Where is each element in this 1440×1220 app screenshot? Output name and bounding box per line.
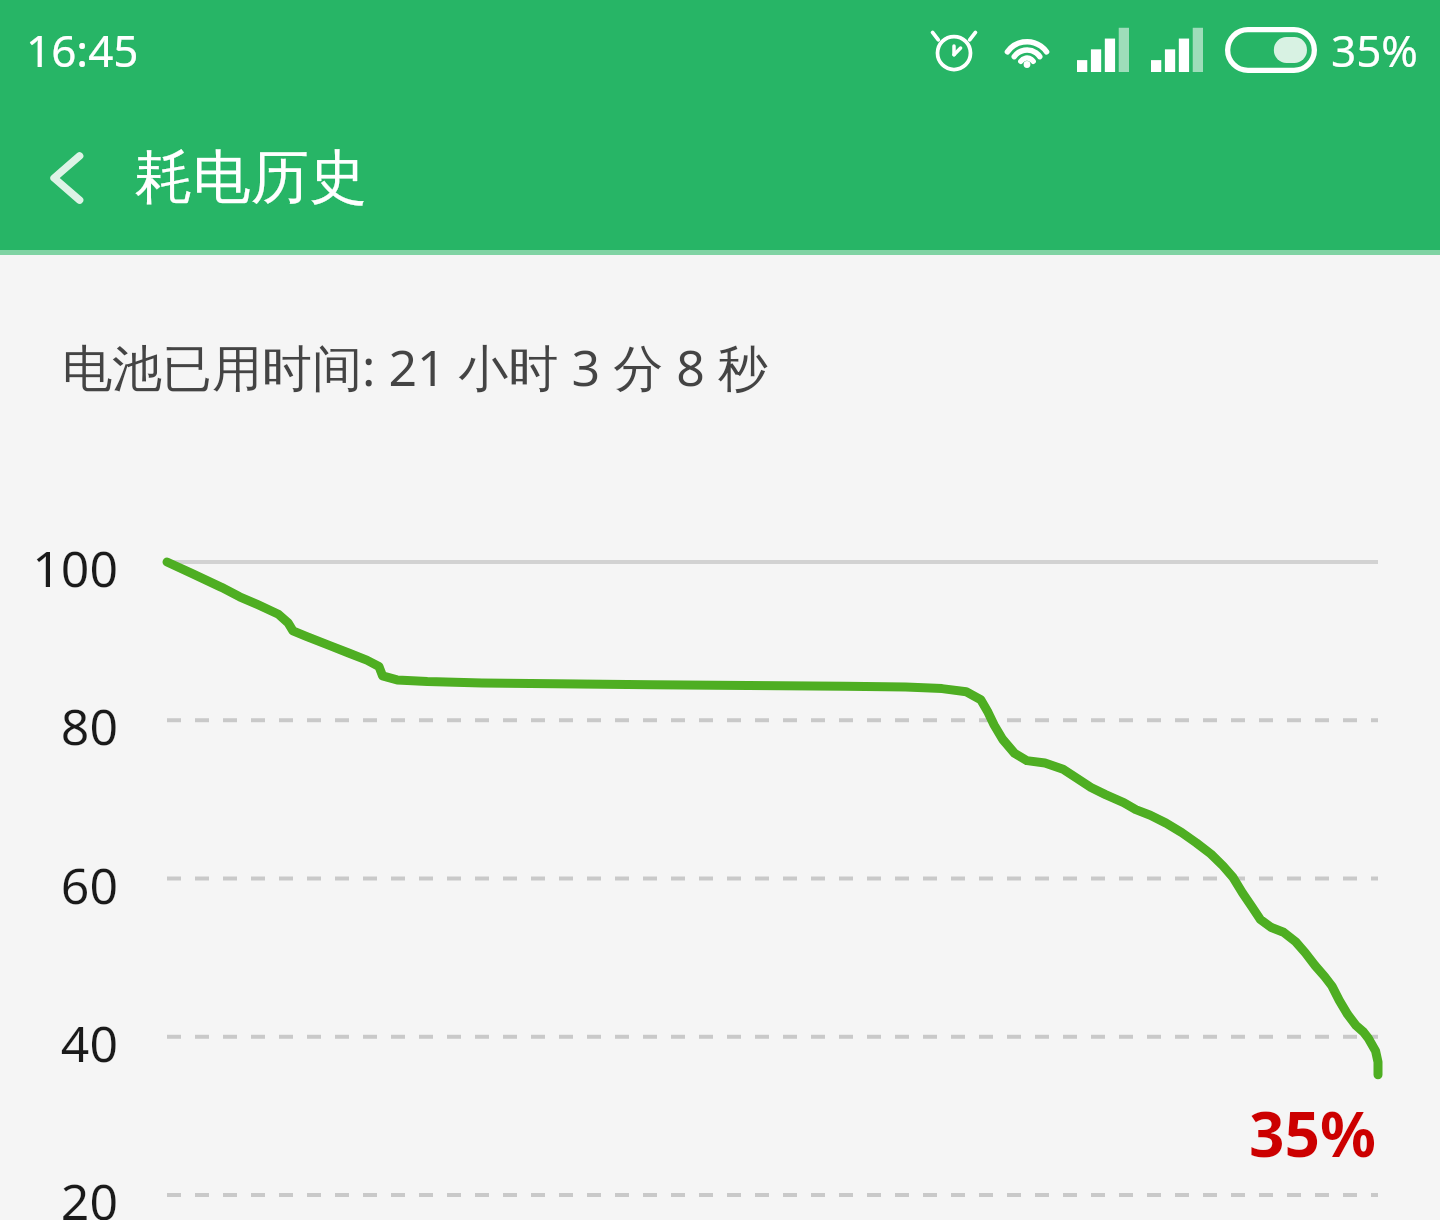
staticText: 80 (0, 692, 118, 760)
staticText: 40 (0, 1009, 118, 1077)
staticText: 电池已用时间: 21 小时 3 分 8 秒 (62, 333, 768, 401)
staticText: 20 (0, 1167, 118, 1220)
staticText: 100 (0, 534, 118, 602)
staticText: 35% (1249, 1091, 1376, 1175)
staticText: 耗电历史 (135, 141, 367, 214)
staticText: 60 (0, 851, 118, 919)
staticText: 16:45 (26, 20, 139, 80)
button[interactable]: Back (0, 100, 135, 255)
staticText: 35% (1331, 20, 1418, 80)
